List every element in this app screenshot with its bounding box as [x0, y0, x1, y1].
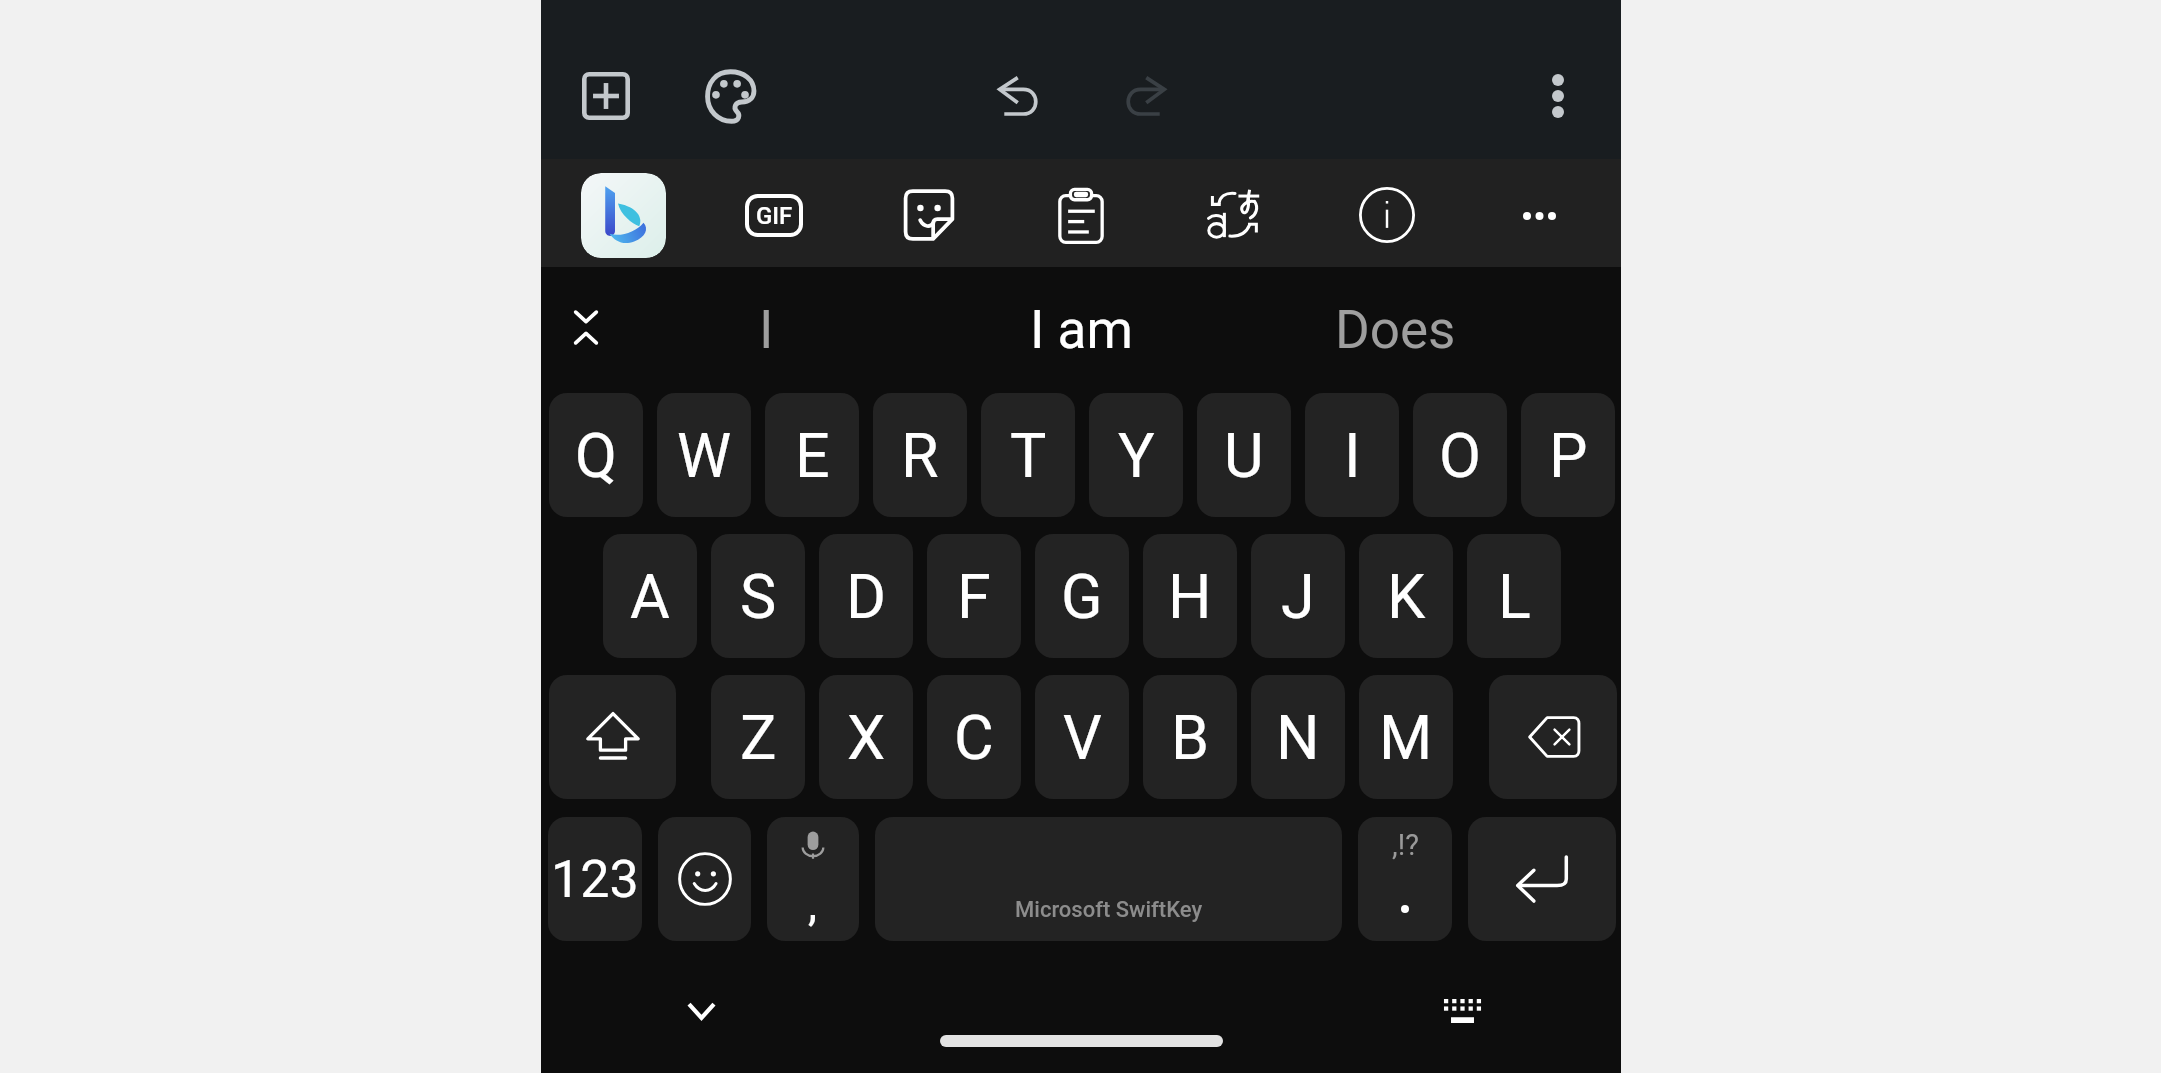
button[interactable]: L: [1467, 534, 1561, 658]
button[interactable]: More: [1491, 168, 1587, 264]
staticText: E: [795, 420, 830, 491]
button[interactable]: M: [1359, 675, 1453, 799]
button[interactable]: D: [819, 534, 913, 658]
staticText: F: [957, 561, 991, 632]
button[interactable]: Redo: [1097, 48, 1193, 144]
button[interactable]: Shift: [549, 675, 676, 799]
button[interactable]: More options: [1510, 48, 1606, 144]
staticText: L: [1498, 561, 1531, 632]
button[interactable]: W: [657, 393, 751, 517]
staticText: H: [1168, 561, 1212, 632]
staticText: U: [1224, 420, 1264, 491]
button[interactable]: Bing: [581, 173, 666, 258]
staticText: C: [954, 702, 994, 773]
button[interactable]: Q: [549, 393, 643, 517]
button[interactable]: 123: [548, 817, 642, 941]
staticText: I: [759, 299, 774, 361]
staticText: I: [1344, 420, 1361, 491]
button[interactable]: P: [1521, 393, 1615, 517]
button[interactable]: Z: [711, 675, 805, 799]
staticText: X: [847, 702, 886, 773]
staticText: O: [1439, 420, 1481, 491]
button[interactable]: Period: [1358, 817, 1452, 941]
button[interactable]: Hide keyboard: [656, 966, 746, 1056]
staticText: Does: [1335, 299, 1456, 361]
staticText: W: [677, 420, 732, 491]
staticText: K: [1387, 561, 1426, 632]
staticText: S: [740, 561, 777, 632]
button[interactable]: Info: [1339, 167, 1435, 263]
button[interactable]: F: [927, 534, 1021, 658]
button[interactable]: Comma: [767, 817, 859, 941]
button[interactable]: Does: [1245, 275, 1545, 385]
button[interactable]: Collapse: [541, 282, 631, 372]
staticText: G: [1061, 561, 1103, 632]
staticText: J: [1281, 561, 1315, 632]
button[interactable]: U: [1197, 393, 1291, 517]
button[interactable]: H: [1143, 534, 1237, 658]
button[interactable]: I: [1305, 393, 1399, 517]
staticText: Microsoft SwiftKey: [1015, 897, 1203, 923]
button[interactable]: Enter: [1468, 817, 1616, 941]
button[interactable]: Undo: [971, 48, 1067, 144]
button[interactable]: J: [1251, 534, 1345, 658]
button[interactable]: X: [819, 675, 913, 799]
staticText: ,!?: [1392, 828, 1419, 862]
staticText: I am: [1030, 299, 1133, 361]
button[interactable]: E: [765, 393, 859, 517]
button[interactable]: G: [1035, 534, 1129, 658]
staticText: V: [1063, 702, 1102, 773]
button[interactable]: R: [873, 393, 967, 517]
staticText: P: [1549, 420, 1588, 491]
staticText: M: [1379, 702, 1433, 773]
button[interactable]: Stickers: [881, 167, 977, 263]
staticText: Z: [740, 702, 777, 773]
button[interactable]: Microsoft SwiftKey: [875, 817, 1342, 941]
button[interactable]: Y: [1089, 393, 1183, 517]
staticText: Q: [575, 420, 617, 491]
button[interactable]: Themes: [682, 48, 778, 144]
button[interactable]: Emoji: [658, 817, 751, 941]
staticText: A: [630, 561, 670, 632]
staticText: Y: [1118, 420, 1155, 491]
button[interactable]: C: [927, 675, 1021, 799]
button[interactable]: A: [603, 534, 697, 658]
button[interactable]: I am: [931, 275, 1231, 385]
staticText: D: [846, 561, 887, 632]
staticText: N: [1276, 702, 1320, 773]
staticText: B: [1171, 702, 1210, 773]
button[interactable]: I: [616, 275, 916, 385]
staticText: ,: [808, 877, 818, 931]
button[interactable]: N: [1251, 675, 1345, 799]
button[interactable]: B: [1143, 675, 1237, 799]
button[interactable]: Backspace: [1489, 675, 1617, 799]
button[interactable]: Switch keyboard: [1417, 966, 1507, 1056]
button[interactable]: T: [981, 393, 1075, 517]
button[interactable]: Translate: [1186, 166, 1282, 262]
staticText: R: [901, 420, 939, 491]
button[interactable]: S: [711, 534, 805, 658]
button[interactable]: O: [1413, 393, 1507, 517]
button[interactable]: Clipboard: [1033, 168, 1129, 264]
button[interactable]: GIF: [726, 167, 822, 263]
button[interactable]: V: [1035, 675, 1129, 799]
button[interactable]: New: [558, 48, 654, 144]
staticText: 123: [551, 849, 639, 910]
staticText: GIF: [756, 202, 793, 230]
button[interactable]: K: [1359, 534, 1453, 658]
staticText: T: [1010, 420, 1047, 491]
